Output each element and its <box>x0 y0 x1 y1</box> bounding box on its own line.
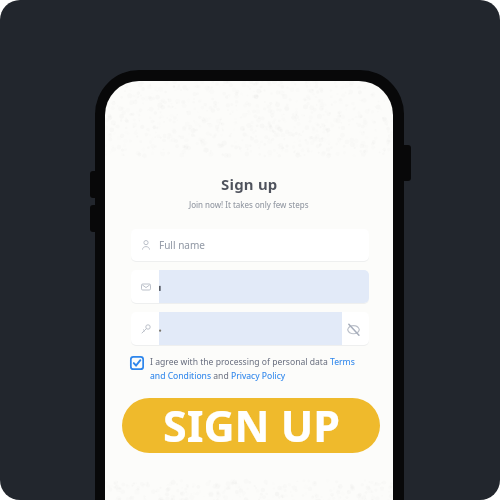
button[interactable]: SIGN UP <box>122 398 380 453</box>
button[interactable]: I agree with the processing of personal … <box>130 356 374 382</box>
staticText: Sign up <box>221 174 278 194</box>
staticText: SIGN UP <box>163 398 340 451</box>
staticText: Full name <box>159 238 205 252</box>
staticText: Join now! It takes only few steps <box>189 199 309 210</box>
staticText: I agree with the processing of personal … <box>150 356 364 382</box>
button[interactable]: Full name <box>131 229 369 261</box>
button[interactable]: Show password <box>131 312 369 345</box>
button[interactable] <box>131 270 369 303</box>
button[interactable]: Show password <box>344 320 362 338</box>
